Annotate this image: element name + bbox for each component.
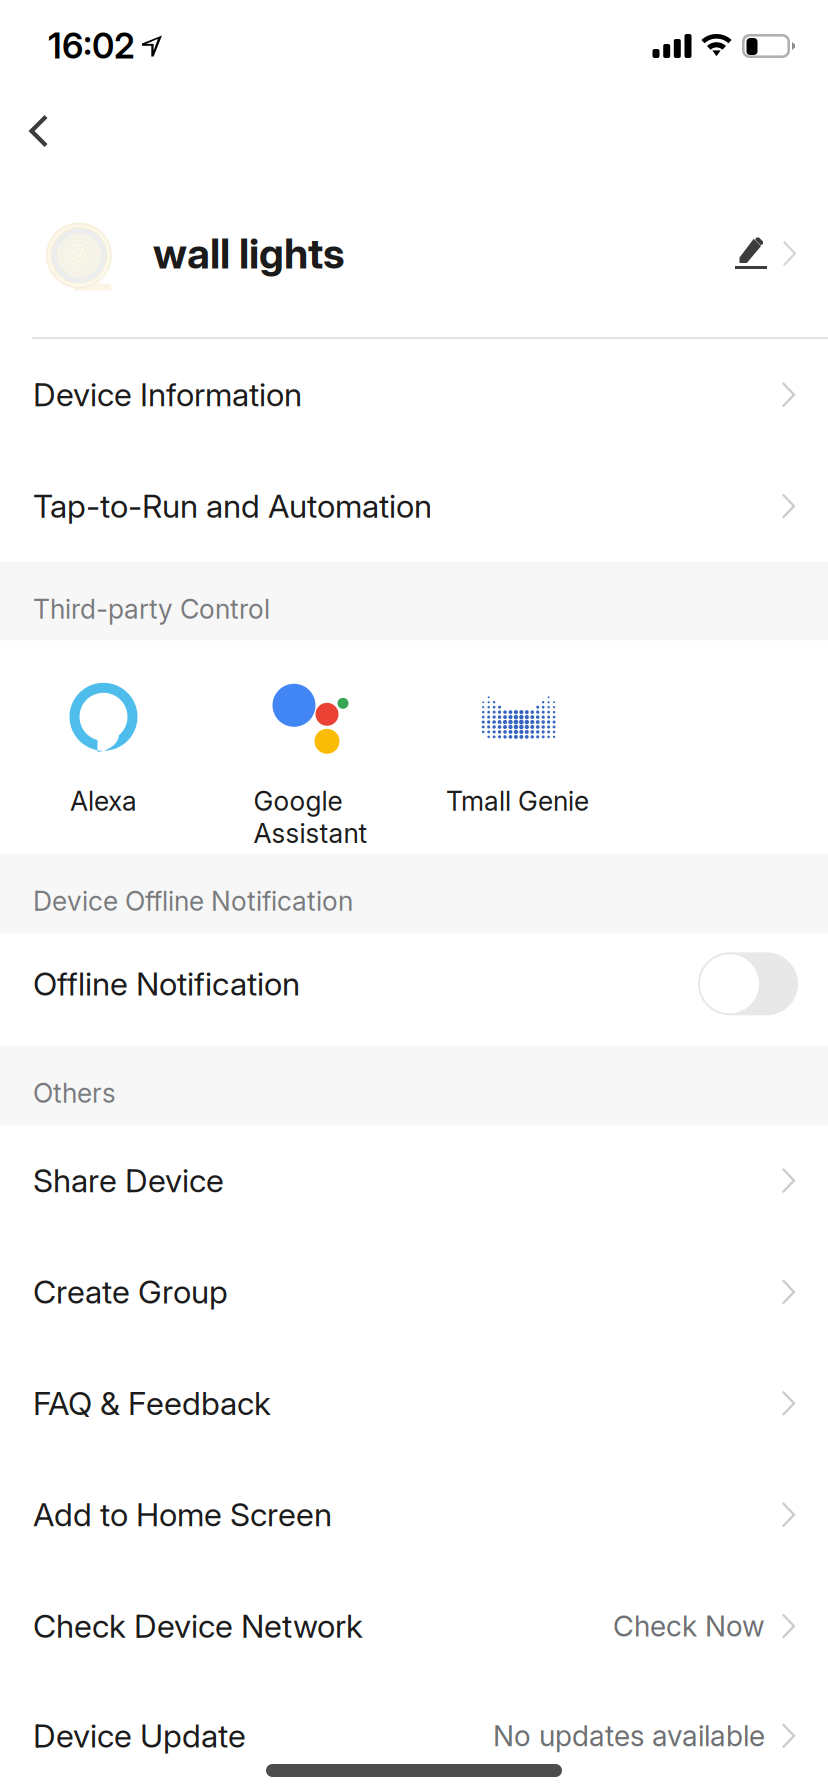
staticText: Check Device Network [33,1607,363,1645]
button[interactable]: Tmall Genie [414,641,621,854]
staticText: Add to Home Screen [33,1495,332,1534]
staticText: Device Offline Notification [33,885,353,917]
button[interactable]: wall lights [0,170,828,337]
button[interactable]: FAQ & Feedback [0,1348,828,1459]
staticText: Offline Notification [33,964,300,1003]
staticText: Device Information [33,375,302,414]
button[interactable]: Share Device [0,1125,828,1236]
button[interactable]: Offline Notification [0,933,828,1046]
staticText: Tap-to-Run and Automation [33,487,432,525]
button[interactable]: Device Update [0,1682,828,1790]
staticText: Device Update [33,1716,246,1755]
button[interactable]: Create Group [0,1236,828,1348]
staticText: Create Group [33,1272,228,1311]
staticText: Google Assistant [253,785,367,849]
staticText: Tmall Genie [446,785,589,817]
staticText: Alexa [70,785,137,817]
staticText: No updates available [493,1718,765,1753]
button[interactable]: Tap-to-Run and Automation [0,450,828,562]
button[interactable]: Back [0,92,88,170]
button[interactable]: Alexa [0,641,207,854]
staticText: wall lights [153,228,345,278]
button[interactable]: Device Information [0,339,828,450]
staticText: 16:02 [48,25,135,67]
button[interactable]: Add to Home Screen [0,1459,828,1570]
staticText: Share Device [33,1161,224,1200]
staticText: Check Now [613,1609,765,1643]
button[interactable]: Check Device Network [0,1570,828,1682]
staticText: FAQ & Feedback [33,1384,271,1423]
staticText: Third-party Control [33,593,270,625]
button[interactable]: Google Assistant [207,641,414,854]
staticText: Others [33,1077,116,1109]
